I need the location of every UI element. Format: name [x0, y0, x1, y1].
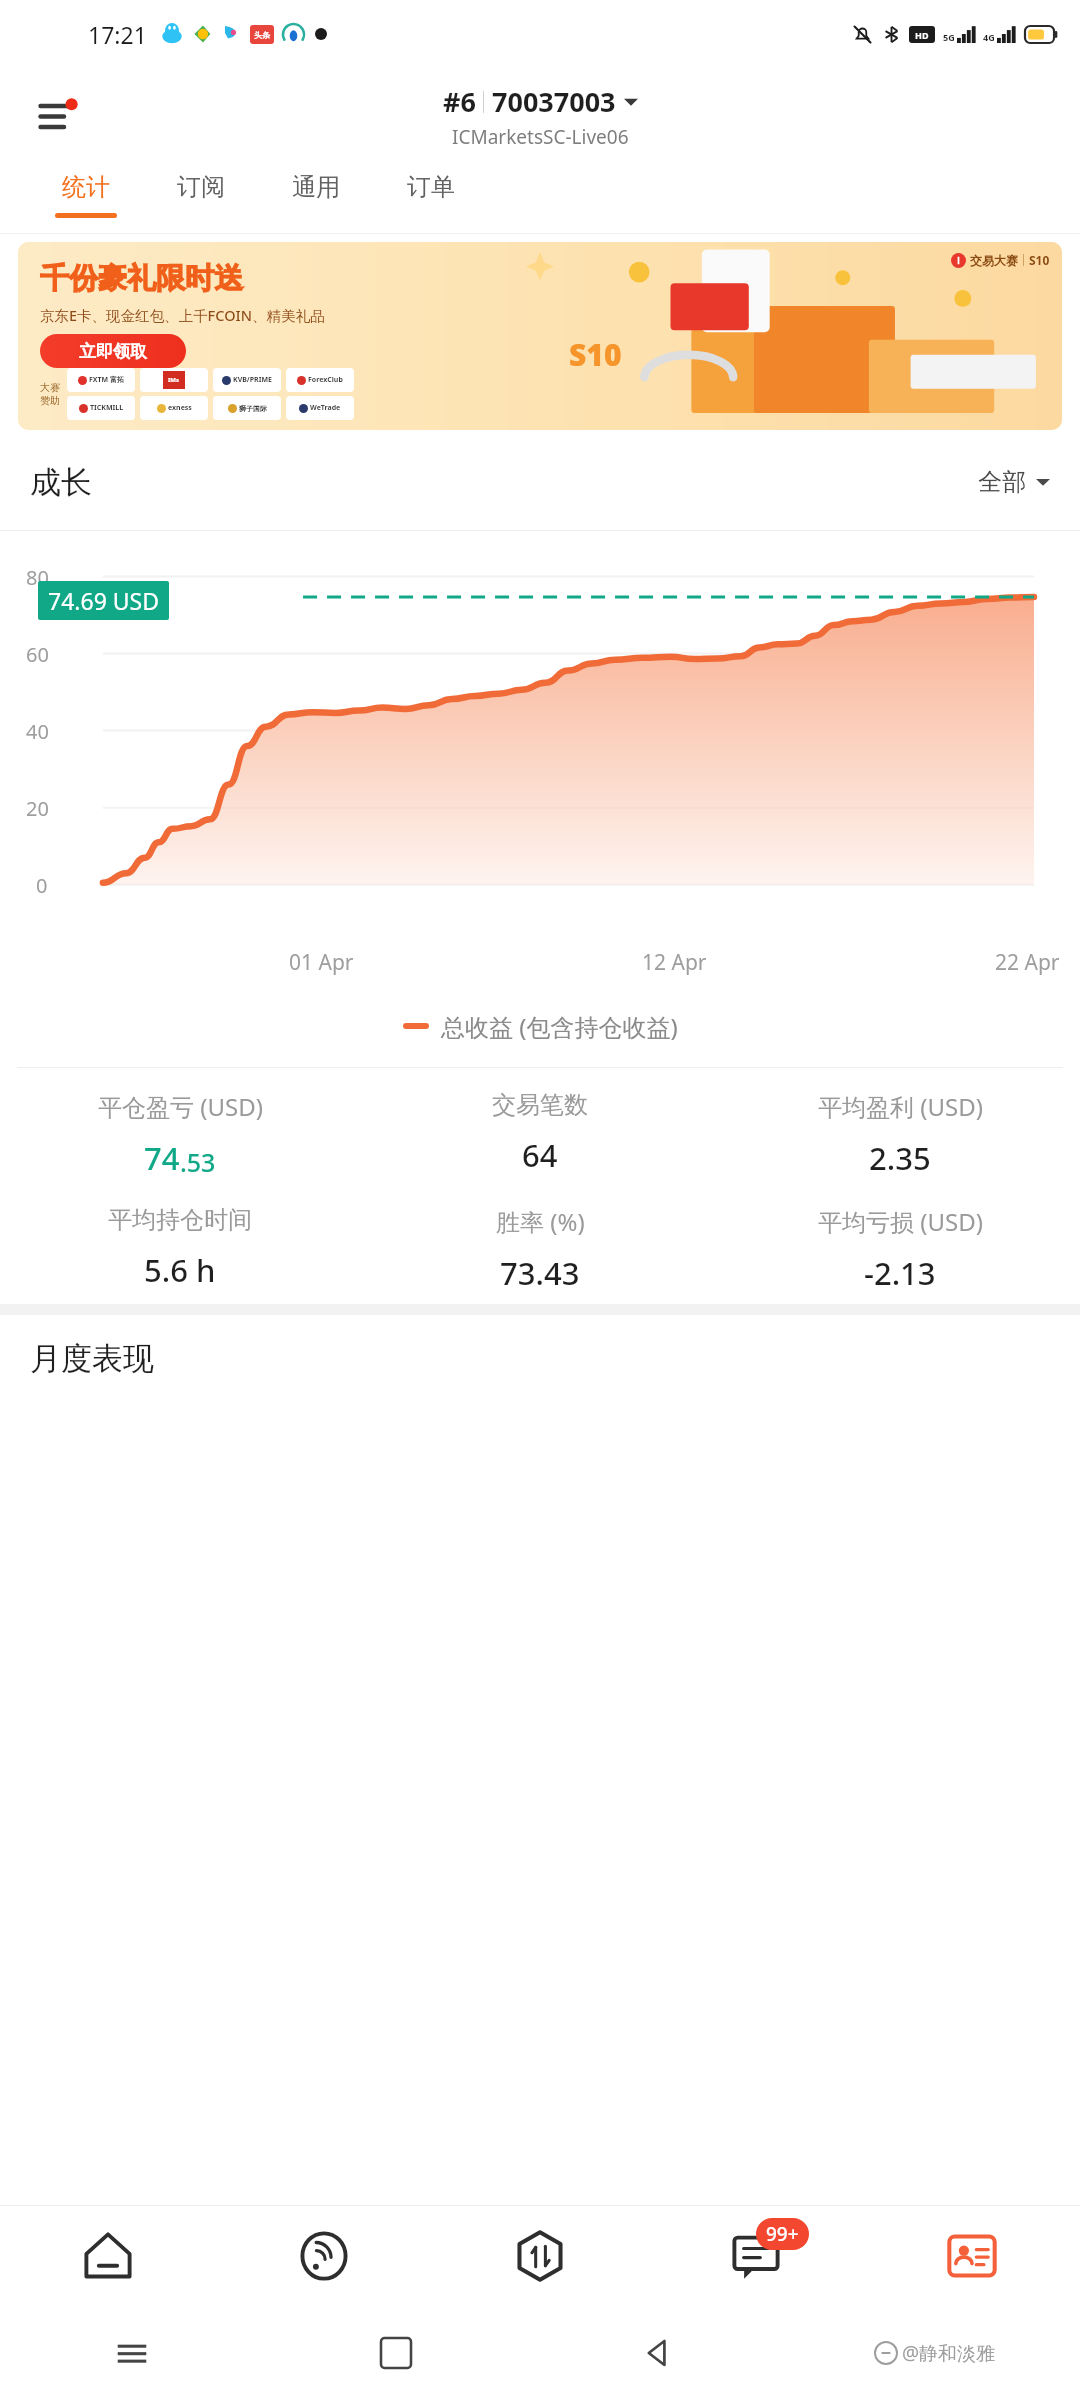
- staticText: 64: [522, 1134, 558, 1176]
- staticText: 平均亏损 (USD): [818, 1205, 983, 1238]
- staticText: 交易大赛: [970, 253, 1018, 268]
- button[interactable]: Home: [0, 2206, 216, 2306]
- staticText: 5G: [943, 31, 955, 43]
- staticText: 17:21: [88, 19, 147, 50]
- staticText: ForexClub: [308, 375, 343, 385]
- staticText: 交易笔数: [492, 1090, 588, 1120]
- button[interactable]: Trade: [432, 2206, 648, 2306]
- button[interactable]: 全部: [978, 467, 1050, 497]
- staticText: 订阅: [177, 172, 225, 202]
- staticText: WeTrade: [310, 403, 341, 413]
- button[interactable]: Menu: [30, 87, 88, 145]
- staticText: 2.35: [869, 1137, 931, 1179]
- staticText: 12 Apr: [642, 948, 707, 977]
- button[interactable]: Back: [527, 2306, 790, 2400]
- button[interactable]: 立即领取: [40, 334, 186, 368]
- button[interactable]: 平均持仓时间: [0, 1205, 360, 1291]
- staticText: 总收益 (包含持仓收益): [441, 1010, 678, 1043]
- button[interactable]: Signals: [216, 2206, 432, 2306]
- staticText: 头条: [254, 30, 270, 40]
- staticText: 0: [36, 872, 48, 899]
- button[interactable]: 胜率 (%): [360, 1205, 720, 1294]
- staticText: 赞助: [40, 394, 60, 407]
- button[interactable]: #6: [443, 83, 638, 120]
- staticText: 4G: [983, 31, 995, 43]
- staticText: 70037003: [492, 83, 616, 120]
- staticText: 狮子国际: [239, 404, 267, 413]
- staticText: KVB/PRIME: [233, 375, 272, 385]
- staticText: 73.43: [500, 1252, 580, 1294]
- staticText: 平仓盈亏 (USD): [98, 1090, 263, 1123]
- staticText: 统计: [62, 172, 110, 202]
- staticText: 月度表现: [30, 1339, 154, 1378]
- staticText: -2.13: [864, 1252, 936, 1294]
- staticText: @静和淡雅: [902, 2340, 996, 2366]
- staticText: #6: [443, 83, 476, 120]
- staticText: 立即领取: [79, 341, 147, 362]
- staticText: TICKMILL: [90, 403, 124, 413]
- button[interactable]: 交易笔数: [360, 1090, 720, 1176]
- button[interactable]: 平均盈利 (USD): [720, 1090, 1080, 1179]
- button[interactable]: 统计: [28, 164, 143, 234]
- staticText: 22 Apr: [995, 948, 1060, 977]
- staticText: 5.6 h: [144, 1249, 216, 1291]
- staticText: .53: [180, 1145, 216, 1179]
- staticText: 74.69 USD: [48, 585, 159, 616]
- button[interactable]: S10: [18, 242, 1062, 430]
- staticText: 平均持仓时间: [108, 1205, 252, 1235]
- button[interactable]: 平均亏损 (USD): [720, 1205, 1080, 1294]
- staticText: IMs: [168, 376, 180, 384]
- button[interactable]: 订单: [373, 164, 488, 234]
- staticText: 平均盈利 (USD): [818, 1090, 983, 1123]
- staticText: 京东E卡、现金红包、上千FCOIN、精美礼品: [40, 305, 325, 325]
- staticText: 大赛: [40, 381, 60, 394]
- staticText: 胜率 (%): [496, 1205, 585, 1238]
- staticText: 80: [26, 564, 49, 591]
- staticText: HD: [915, 29, 929, 41]
- button[interactable]: 订阅: [143, 164, 258, 234]
- staticText: 01 Apr: [289, 948, 354, 977]
- button[interactable]: Home: [264, 2306, 527, 2400]
- staticText: 74: [144, 1137, 180, 1179]
- staticText: ICMarketsSC-Live06: [452, 124, 629, 150]
- button[interactable]: 通用: [258, 164, 373, 234]
- staticText: 通用: [292, 172, 340, 202]
- staticText: 全部: [978, 467, 1026, 497]
- staticText: 成长: [30, 463, 92, 502]
- staticText: 60: [26, 641, 49, 668]
- button[interactable]: Messages: [648, 2206, 864, 2306]
- staticText: 订单: [407, 172, 455, 202]
- button[interactable]: Recents: [0, 2306, 264, 2400]
- staticText: S10: [569, 334, 622, 375]
- button[interactable]: 平仓盈亏 (USD): [0, 1090, 360, 1179]
- button[interactable]: Profile: [864, 2206, 1080, 2306]
- staticText: 千份豪礼限时送: [40, 260, 243, 297]
- staticText: exness: [168, 403, 192, 413]
- staticText: S10: [1029, 252, 1050, 268]
- staticText: FXTM 富拓: [89, 375, 124, 385]
- staticText: 99+: [766, 2221, 799, 2247]
- staticText: 20: [26, 795, 49, 822]
- staticText: 40: [26, 718, 49, 745]
